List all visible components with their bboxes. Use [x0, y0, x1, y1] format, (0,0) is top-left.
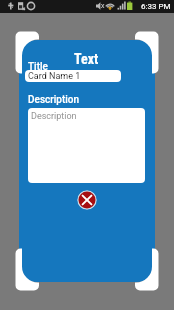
staticText: Text [74, 51, 99, 67]
staticText: Title [28, 61, 48, 73]
button[interactable]: Delete [77, 190, 97, 210]
button[interactable]: Card Name 1 [25, 70, 121, 82]
button[interactable]: Description [28, 108, 145, 183]
staticText: Card Name 1 [28, 71, 81, 82]
staticText: Description [28, 94, 80, 106]
staticText: Description [31, 111, 77, 122]
staticText: 6:33 PM [141, 2, 171, 11]
